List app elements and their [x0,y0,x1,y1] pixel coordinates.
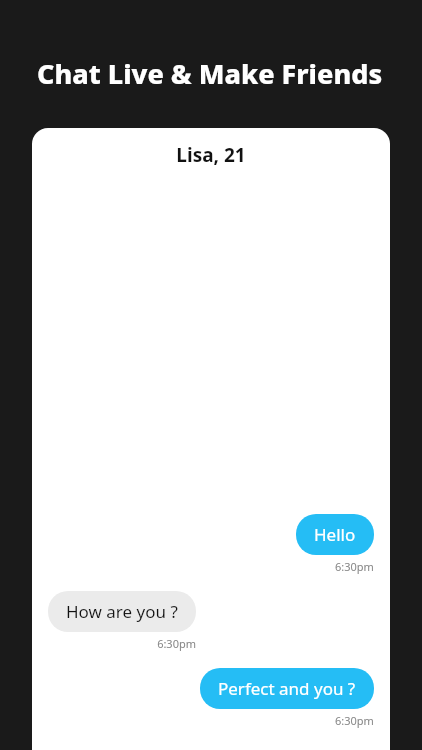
staticText: 6:30pm [335,559,374,574]
button[interactable]: Hello [296,514,374,555]
staticText: Hello [314,523,356,546]
staticText: Chat Live & Make Friends [37,55,383,92]
staticText: Perfect and you ? [218,677,356,700]
button[interactable]: Perfect and you ? [200,668,374,709]
staticText: How are you ? [66,600,178,623]
button[interactable]: How are you ? [48,591,196,632]
staticText: Lisa, 21 [32,142,390,168]
staticText: 6:30pm [335,713,374,728]
staticText: 6:30pm [48,636,196,651]
